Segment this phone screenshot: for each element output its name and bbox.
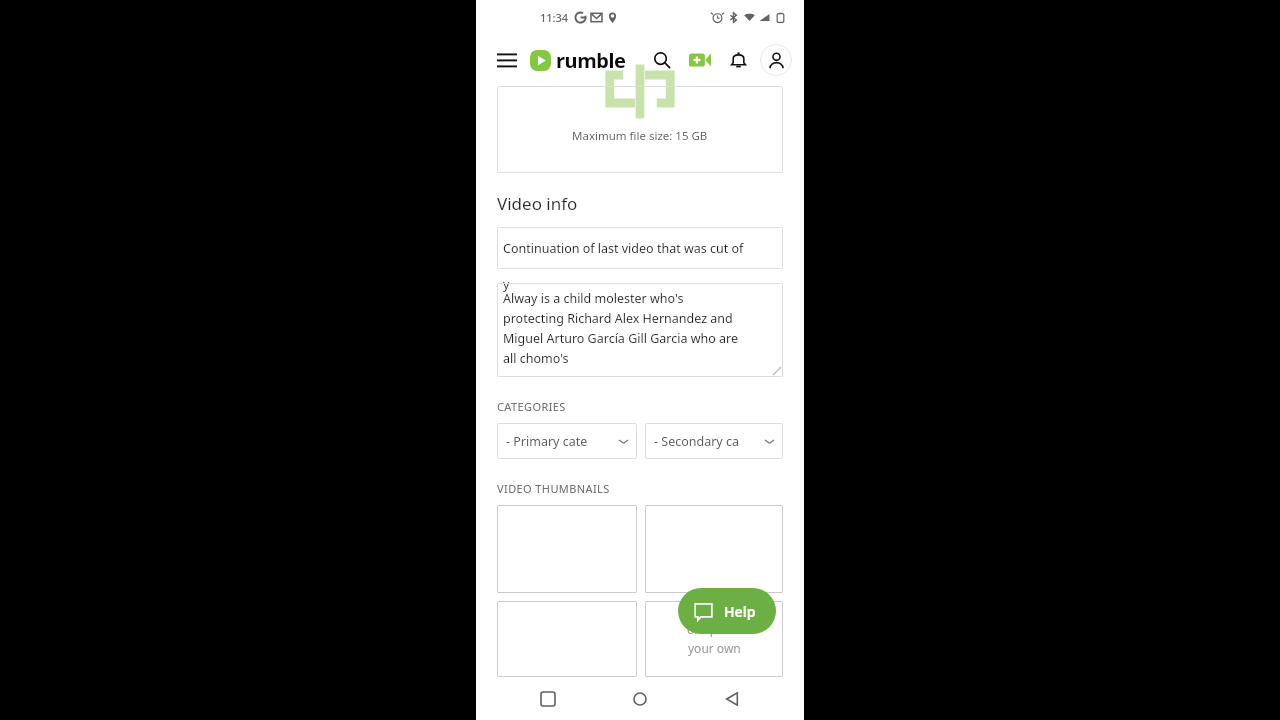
staticText: y bbox=[503, 276, 510, 293]
button[interactable]: - Secondary ca bbox=[645, 423, 783, 459]
staticText: Alway is a child molester who's bbox=[503, 290, 684, 307]
button[interactable]: Notifications bbox=[722, 44, 754, 76]
staticText: all chomo's bbox=[503, 350, 569, 367]
staticText: rumble bbox=[556, 47, 626, 74]
button[interactable]: or upload bbox=[645, 601, 783, 677]
button[interactable]: Recent apps bbox=[528, 679, 568, 719]
staticText: 11:34 bbox=[540, 10, 569, 25]
button[interactable] bbox=[645, 505, 783, 593]
button[interactable]: Home bbox=[620, 679, 660, 719]
staticText: protecting Richard Alex Hernandez and bbox=[503, 310, 733, 327]
staticText: Continuation of last video that was cut … bbox=[503, 240, 744, 257]
button[interactable]: - Primary cate bbox=[497, 423, 637, 459]
button[interactable]: Search bbox=[646, 44, 678, 76]
staticText: VIDEO THUMBNAILS bbox=[497, 481, 610, 496]
staticText: your own bbox=[688, 640, 741, 656]
button[interactable] bbox=[497, 505, 637, 593]
button[interactable]: Upload video bbox=[684, 44, 716, 76]
button[interactable]: Continuation of last video that was cut … bbox=[497, 227, 783, 269]
button[interactable]: Help bbox=[678, 588, 776, 634]
button[interactable]: Back bbox=[712, 679, 752, 719]
staticText: CATEGORIES bbox=[497, 399, 566, 414]
staticText: or upload bbox=[687, 621, 742, 637]
button[interactable] bbox=[497, 601, 637, 677]
button[interactable]: Maximum file size: 15 GB bbox=[497, 86, 783, 173]
staticText: Video info bbox=[497, 192, 578, 215]
staticText: Help bbox=[724, 602, 756, 621]
staticText: - Secondary ca bbox=[654, 433, 739, 450]
button[interactable]: Menu bbox=[490, 43, 524, 77]
staticText: Miguel Arturo García Gill Garcia who are bbox=[503, 330, 739, 347]
staticText: Maximum file size: 15 GB bbox=[572, 128, 708, 144]
staticText: - Primary cate bbox=[506, 433, 588, 450]
button[interactable]: Alway is a child molester who's bbox=[497, 283, 783, 377]
button[interactable]: Rumble home bbox=[530, 47, 626, 74]
button[interactable]: Account bbox=[760, 44, 792, 76]
